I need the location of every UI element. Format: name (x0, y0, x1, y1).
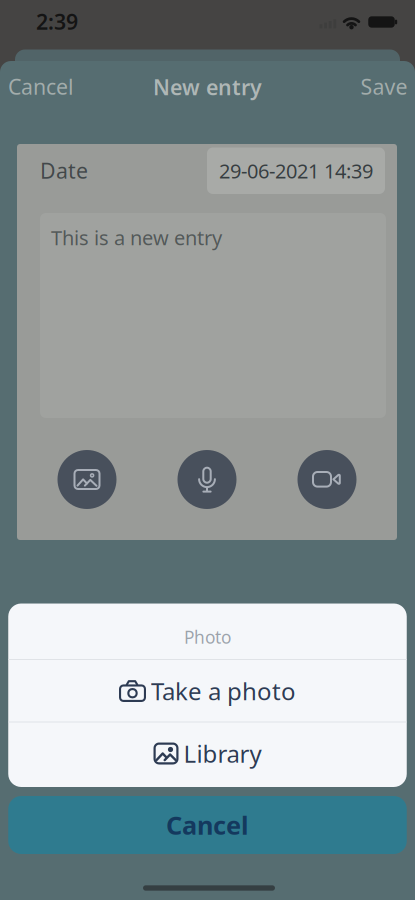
staticText: Cancel (8, 72, 74, 101)
button[interactable]: Add photo (57, 450, 116, 509)
button[interactable]: Record video (297, 450, 356, 509)
button[interactable]: Save (360, 72, 407, 101)
staticText: Take a photo (151, 675, 296, 707)
staticText: Save (360, 72, 407, 101)
button[interactable]: Cancel (8, 796, 407, 854)
staticText: New entry (153, 73, 262, 101)
staticText: 2:39 (36, 7, 78, 36)
button[interactable]: Take a photo (8, 660, 407, 721)
staticText: Photo (184, 625, 231, 648)
staticText: Library (183, 738, 261, 769)
staticText: Cancel (166, 808, 249, 842)
staticText: This is a new entry (51, 224, 222, 251)
button[interactable]: Library (8, 722, 407, 784)
staticText: Date (40, 156, 88, 185)
button[interactable]: Cancel (8, 72, 74, 101)
button[interactable]: 29-06-2021 14:39 (207, 147, 385, 194)
staticText: 29-06-2021 14:39 (219, 157, 373, 184)
button[interactable]: Record audio (177, 450, 236, 509)
